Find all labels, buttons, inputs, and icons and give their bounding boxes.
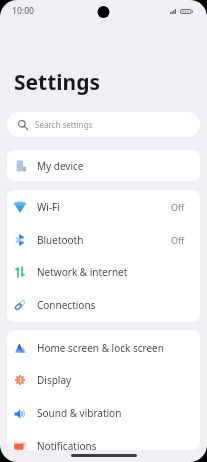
button[interactable]: Notifications xyxy=(7,429,200,450)
button[interactable]: Network & internet xyxy=(7,255,200,288)
staticText: Sound & vibration xyxy=(37,406,122,420)
button[interactable]: My device xyxy=(7,150,200,181)
staticText: Search settings xyxy=(35,119,93,130)
staticText: My device xyxy=(37,159,84,173)
button[interactable]: Bluetooth xyxy=(7,223,200,256)
button[interactable]: Display xyxy=(7,363,200,396)
staticText: Off xyxy=(171,234,185,246)
staticText: Off xyxy=(171,201,185,213)
staticText: Home screen & lock screen xyxy=(37,341,164,355)
button[interactable]: Connections xyxy=(7,288,200,321)
staticText: Display xyxy=(37,373,72,387)
button[interactable]: Sound & vibration xyxy=(7,396,200,429)
staticText: Wi-Fi xyxy=(37,200,60,214)
button[interactable]: Search settings xyxy=(7,112,200,137)
staticText: 10:00 xyxy=(12,5,35,17)
button[interactable]: Wi-Fi xyxy=(7,190,200,223)
staticText: Bluetooth xyxy=(37,233,84,247)
staticText: Network & internet xyxy=(37,265,128,279)
staticText: Notifications xyxy=(37,439,97,450)
staticText: Connections xyxy=(37,298,96,312)
button[interactable]: Home screen & lock screen xyxy=(7,331,200,364)
staticText: Settings xyxy=(14,68,101,97)
